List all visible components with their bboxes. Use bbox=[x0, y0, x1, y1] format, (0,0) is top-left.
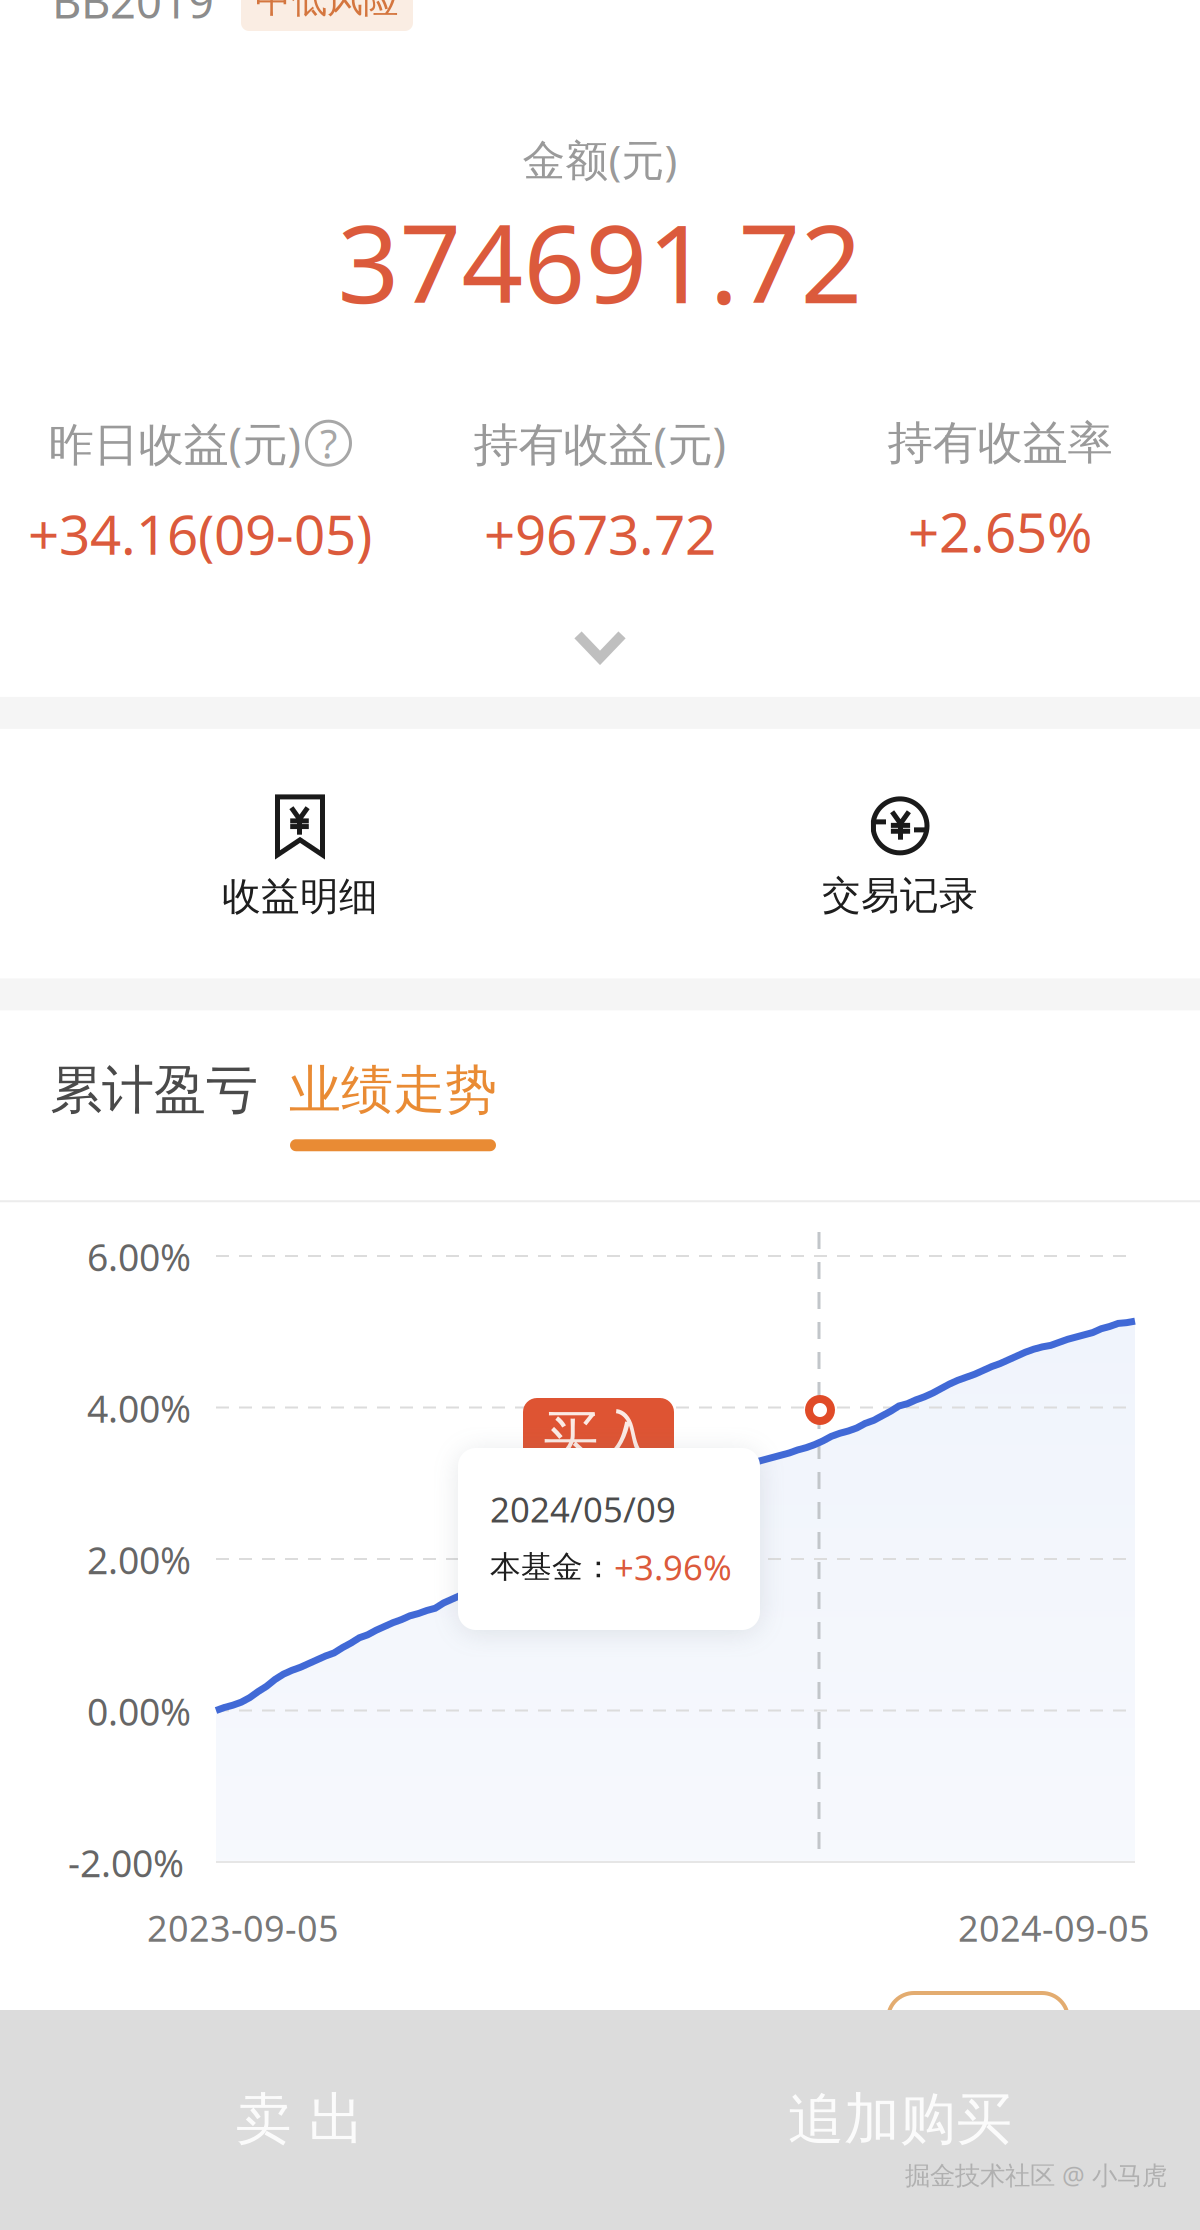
staticText: ? bbox=[320, 417, 337, 470]
staticText: 2023-09-05 bbox=[147, 1904, 339, 1952]
staticText: +9673.72 bbox=[484, 497, 716, 570]
staticText: 2024/05/09 bbox=[490, 1486, 676, 1532]
staticText: 6.00% bbox=[87, 1232, 191, 1282]
staticText: 持有收益率 bbox=[887, 415, 1112, 471]
staticText: 昨日收益(元) bbox=[48, 413, 301, 473]
button[interactable]: 卖 出 bbox=[0, 2085, 600, 2154]
staticText: 掘金技术社区 @ 小马虎 bbox=[905, 2158, 1167, 2192]
staticText: -2.00% bbox=[68, 1838, 184, 1888]
button[interactable]: 累计盈亏 bbox=[50, 1058, 258, 1122]
staticText: 2024-09-05 bbox=[958, 1904, 1150, 1952]
staticText: 374691.72 bbox=[337, 190, 862, 333]
button[interactable]: 交易记录 bbox=[600, 766, 1200, 949]
staticText: 持有收益(元) bbox=[473, 413, 726, 473]
staticText: 买入 bbox=[542, 1403, 654, 1471]
staticText: 业绩走势 bbox=[289, 1058, 497, 1122]
staticText: BB2019 bbox=[52, 0, 214, 31]
staticText: 本基金： bbox=[490, 1548, 614, 1586]
button[interactable]: 追加购买 bbox=[600, 2085, 1200, 2154]
staticText: 4.00% bbox=[87, 1383, 191, 1433]
staticText: 金额(元) bbox=[522, 131, 677, 188]
staticText: 卖 出 bbox=[235, 2085, 364, 2154]
button[interactable]: 业绩走势 bbox=[289, 1058, 497, 1151]
staticText: +2.65% bbox=[908, 495, 1092, 568]
staticText: 收益明细 bbox=[222, 873, 378, 920]
staticText: +34.16(09-05) bbox=[28, 497, 372, 570]
staticText: 追加购买 bbox=[788, 2085, 1012, 2154]
button[interactable]: 收益明细 bbox=[0, 765, 600, 950]
staticText: 2.00% bbox=[87, 1535, 191, 1585]
staticText: 0.00% bbox=[87, 1686, 191, 1736]
staticText: +3.96% bbox=[614, 1544, 732, 1590]
button[interactable]: 展开 bbox=[573, 570, 627, 697]
staticText: 交易记录 bbox=[822, 872, 978, 919]
staticText: 中低风险 bbox=[255, 0, 399, 22]
staticText: 累计盈亏 bbox=[50, 1058, 258, 1122]
